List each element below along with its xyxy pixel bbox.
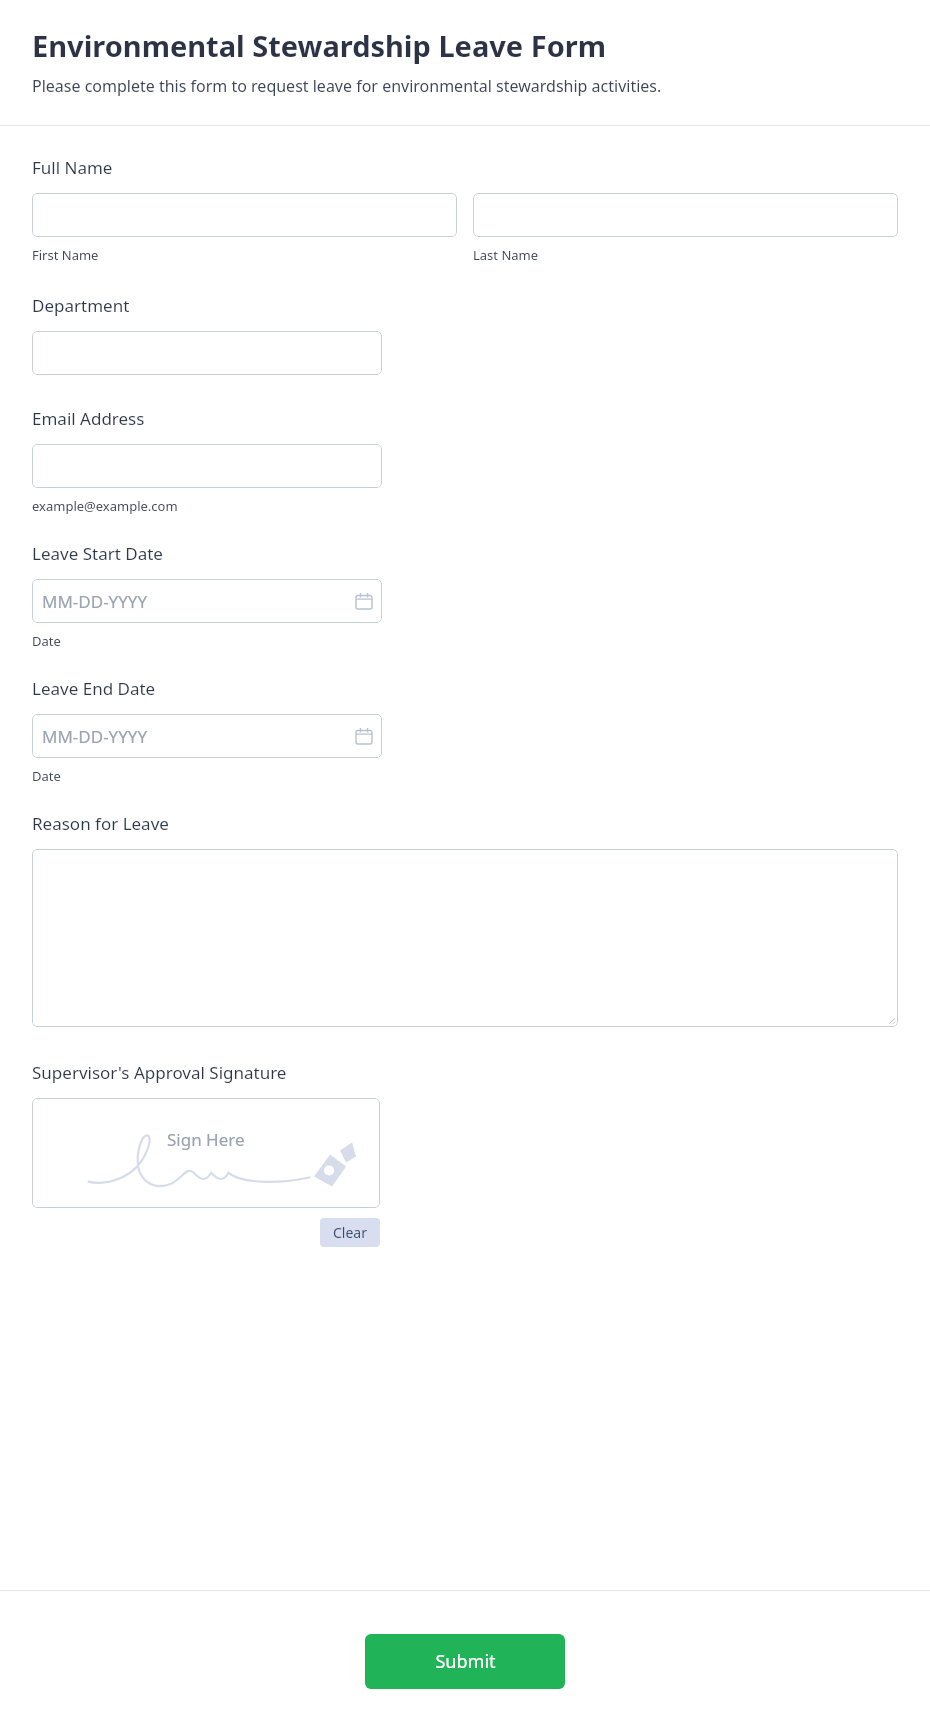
staticText: Last Name: [473, 246, 539, 264]
staticText: Email Address: [32, 407, 145, 430]
button[interactable]: MM-DD-YYYY: [32, 579, 382, 623]
button[interactable]: Submit: [365, 1634, 565, 1689]
staticText: Environmental Stewardship Leave Form: [32, 26, 606, 65]
staticText: Leave End Date: [32, 677, 156, 700]
staticText: MM-DD-YYYY: [42, 725, 148, 748]
button[interactable]: [32, 193, 457, 237]
staticText: Full Name: [32, 156, 113, 179]
staticText: Sign Here: [167, 1128, 245, 1151]
staticText: Submit: [435, 1649, 496, 1674]
staticText: Department: [32, 294, 130, 317]
staticText: Date: [32, 632, 61, 650]
staticText: First Name: [32, 246, 99, 264]
staticText: Clear: [333, 1223, 367, 1242]
button[interactable]: Clear: [320, 1218, 380, 1247]
staticText: MM-DD-YYYY: [42, 590, 148, 613]
button[interactable]: Sign Here: [32, 1098, 380, 1208]
other: Pick date: [356, 593, 372, 609]
button[interactable]: [473, 193, 898, 237]
staticText: Please complete this form to request lea…: [32, 75, 662, 97]
staticText: example@example.com: [32, 497, 178, 515]
button[interactable]: [32, 331, 382, 375]
staticText: Supervisor's Approval Signature: [32, 1061, 287, 1084]
staticText: Reason for Leave: [32, 812, 169, 835]
staticText: Date: [32, 767, 61, 785]
button[interactable]: MM-DD-YYYY: [32, 714, 382, 758]
staticText: Leave Start Date: [32, 542, 163, 565]
button[interactable]: [32, 849, 898, 1027]
other: Pick date: [356, 728, 372, 744]
button[interactable]: [32, 444, 382, 488]
